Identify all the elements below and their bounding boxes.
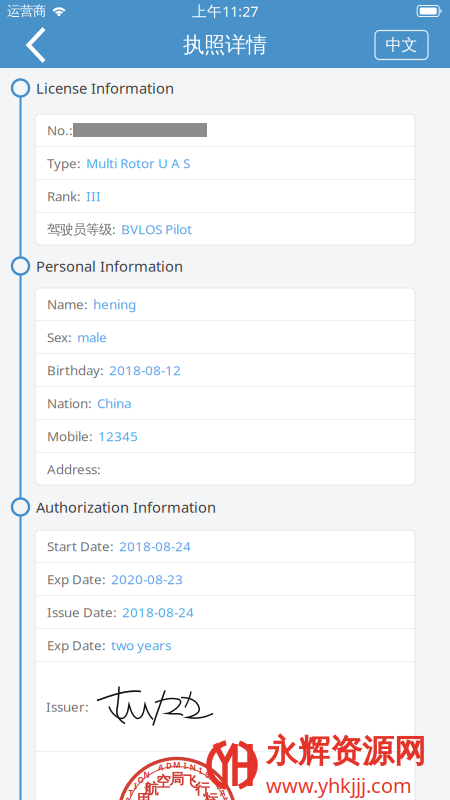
staticText: D — [166, 760, 172, 771]
staticText: Start Date: — [47, 537, 114, 555]
staticText: 运营商 — [7, 3, 46, 19]
staticText: 2018-08-24 — [122, 603, 194, 621]
staticText: 驾驶员等级: — [47, 220, 116, 238]
staticText: I — [184, 760, 187, 771]
staticText: China — [97, 394, 131, 412]
staticText: M — [173, 760, 181, 770]
staticText: Issuer: — [46, 698, 89, 715]
staticText: male — [77, 328, 107, 346]
staticText: III — [86, 187, 101, 205]
staticText: Name: — [47, 295, 88, 313]
staticText: Exp Date: — [47, 570, 106, 588]
staticText: T — [211, 775, 216, 785]
staticText: www.yhkjjj.com — [266, 772, 412, 798]
staticText: Sex: — [47, 328, 72, 346]
staticText: BVLOS Pilot — [121, 220, 192, 238]
staticText: 飞 — [183, 772, 198, 790]
staticText: 中文 — [385, 35, 417, 55]
button[interactable]: Back — [12, 22, 60, 68]
staticText: T — [128, 788, 133, 798]
staticText: 12345 — [98, 427, 138, 445]
staticText: A — [125, 795, 131, 800]
staticText: License Information — [36, 78, 174, 98]
staticText: Issue Date: — [47, 603, 117, 621]
staticText: Multi Rotor U A S — [86, 154, 190, 172]
staticText: S — [205, 769, 209, 780]
staticText: A — [220, 788, 226, 798]
staticText: 2018-08-24 — [119, 537, 191, 555]
staticText: 执照详情 — [183, 32, 267, 58]
staticText: I — [134, 781, 137, 791]
staticText: hening — [93, 295, 136, 313]
staticText: Rank: — [47, 187, 81, 205]
staticText: A — [158, 762, 164, 773]
staticText: Personal Information — [36, 256, 183, 276]
staticText: Type: — [47, 154, 81, 172]
staticText: Nation: — [47, 394, 92, 412]
staticText: 航 — [144, 780, 159, 798]
staticText: T — [224, 795, 229, 800]
staticText: Authorization Information — [36, 497, 216, 517]
button[interactable]: 中文 — [375, 30, 428, 59]
staticText: 用 — [136, 791, 151, 800]
staticText: R — [216, 781, 221, 791]
staticText: 永辉资源网 — [266, 732, 426, 771]
staticText: O — [137, 775, 143, 785]
staticText: 2018-08-12 — [109, 361, 181, 379]
staticText: N — [143, 769, 150, 780]
staticText: I — [199, 765, 202, 776]
staticText: Exp Date: — [47, 636, 106, 654]
staticText: Mobile: — [47, 427, 93, 445]
staticText: Birthday: — [47, 361, 104, 379]
staticText: 行 — [195, 780, 210, 798]
staticText: 上午11:27 — [192, 1, 258, 21]
staticText: 空 — [156, 772, 171, 790]
staticText: 标 — [203, 791, 218, 800]
staticText — [153, 765, 155, 776]
staticText: two years — [111, 636, 171, 654]
staticText: 2020-08-23 — [111, 570, 183, 588]
staticText: No.: — [47, 121, 73, 139]
staticText: 局 — [169, 770, 184, 788]
staticText: Address: — [47, 460, 101, 478]
staticText: N — [189, 762, 196, 773]
